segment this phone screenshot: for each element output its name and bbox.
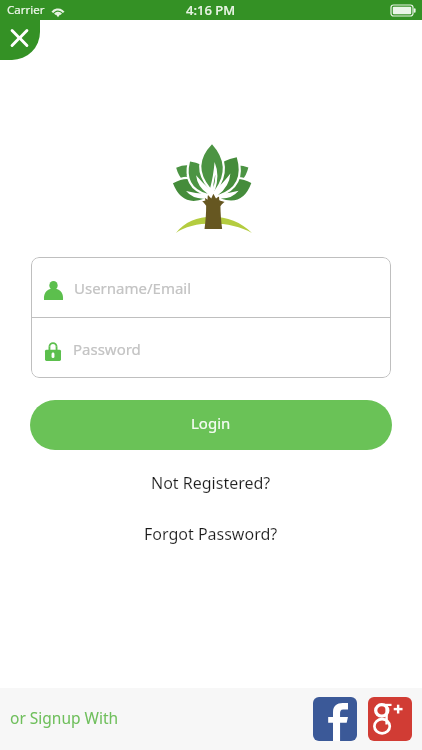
button[interactable]: Sign up with Google Plus <box>368 697 412 741</box>
button[interactable]: Sign up with Facebook <box>313 697 357 741</box>
staticText: Login <box>191 413 231 433</box>
button[interactable]: Login <box>30 400 392 450</box>
staticText: Carrier <box>7 2 45 18</box>
staticText: Forgot Password? <box>144 523 278 545</box>
button[interactable]: Username/Email <box>31 257 391 317</box>
staticText: Username/Email <box>74 278 192 298</box>
staticText: 4:16 PM <box>186 1 236 19</box>
staticText: or Signup With <box>10 707 119 728</box>
button[interactable]: Not Registered? <box>145 466 277 500</box>
button[interactable]: Password <box>31 318 391 378</box>
staticText: Not Registered? <box>151 472 271 494</box>
button[interactable]: Forgot Password? <box>138 517 284 551</box>
staticText: Password <box>73 339 141 359</box>
button[interactable]: Close <box>0 20 40 60</box>
